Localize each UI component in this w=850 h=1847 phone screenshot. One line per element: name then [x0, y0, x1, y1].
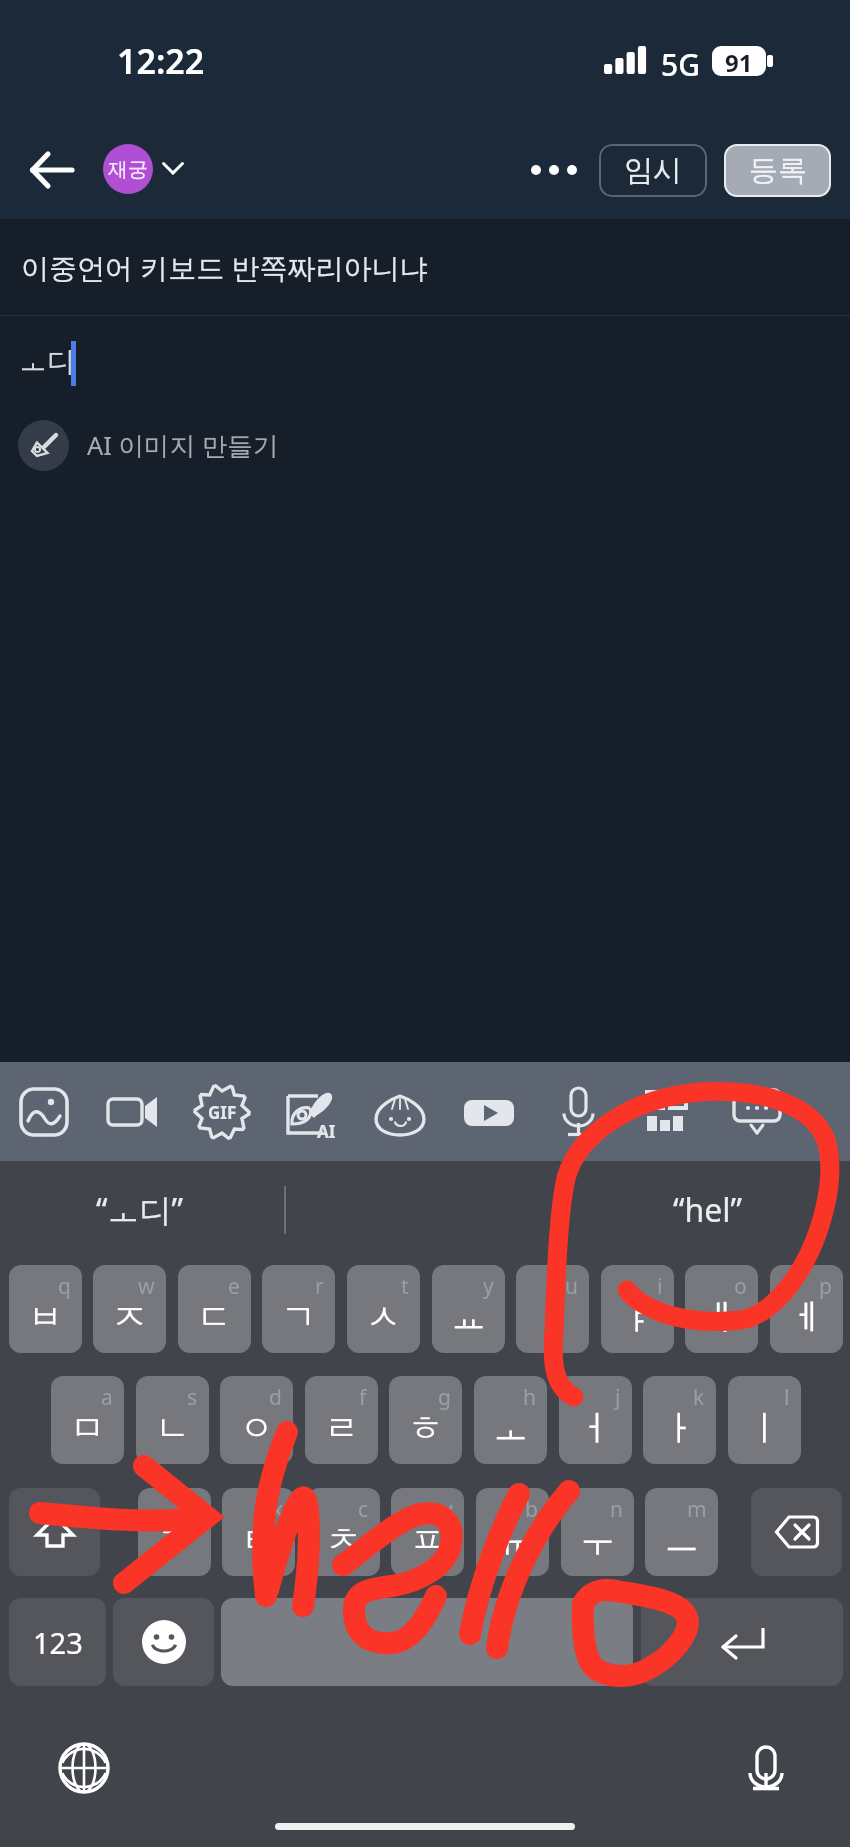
button[interactable]: q	[9, 1265, 82, 1353]
staticText: f	[359, 1383, 367, 1412]
button[interactable]: l	[728, 1376, 801, 1464]
staticText: ㅜ	[580, 1518, 615, 1562]
button[interactable]: Voice input	[726, 1728, 806, 1808]
button[interactable]: i	[601, 1265, 674, 1353]
staticText: 등록	[749, 152, 807, 189]
staticText: u	[565, 1272, 578, 1301]
button[interactable]: e	[178, 1265, 251, 1353]
staticText: ㅇ	[239, 1406, 274, 1450]
staticText: ㅎ	[408, 1406, 443, 1450]
staticText: l	[784, 1383, 790, 1412]
staticText: v	[442, 1495, 453, 1524]
staticText: 123	[33, 1623, 83, 1662]
staticText: ㅏ	[662, 1406, 697, 1450]
button[interactable]: Backspace	[751, 1488, 842, 1576]
staticText: ㅗ	[493, 1406, 528, 1450]
staticText: i	[657, 1272, 663, 1301]
button[interactable]: Image	[0, 1062, 88, 1161]
staticText: ㄹ	[324, 1406, 359, 1450]
button[interactable]: v	[391, 1488, 464, 1576]
button[interactable]: t	[347, 1265, 420, 1353]
staticText: 12:22	[117, 38, 205, 84]
button[interactable]: Shift	[9, 1488, 100, 1576]
staticText: ㅍ	[410, 1518, 445, 1562]
staticText: o	[734, 1272, 747, 1301]
staticText: 이중언어 키보드 반쪽짜리아니냐	[21, 248, 428, 286]
button[interactable]: c	[307, 1488, 380, 1576]
button[interactable]: Voice	[534, 1062, 622, 1161]
staticText: e	[228, 1272, 240, 1301]
staticText: ㅣ	[747, 1406, 782, 1450]
button[interactable]: QR code	[623, 1062, 711, 1161]
button[interactable]: AI 이미지 만들기	[18, 419, 279, 471]
button[interactable]: 임시	[599, 144, 707, 197]
button[interactable]: h	[474, 1376, 547, 1464]
button[interactable]: a	[51, 1376, 124, 1464]
button[interactable]: x	[222, 1488, 295, 1576]
button[interactable]: n	[561, 1488, 634, 1576]
button[interactable]: More keyboards	[712, 1062, 800, 1161]
button[interactable]: f	[305, 1376, 378, 1464]
button[interactable]: s	[136, 1376, 209, 1464]
button[interactable]: Space	[221, 1598, 633, 1686]
button[interactable]: Video	[89, 1062, 177, 1161]
staticText: h	[523, 1383, 536, 1412]
button[interactable]: More options	[518, 140, 590, 200]
staticText: g	[438, 1383, 451, 1412]
staticText: 임시	[624, 152, 682, 189]
button[interactable]: r	[262, 1265, 335, 1353]
button[interactable]: GIF	[178, 1062, 266, 1161]
button[interactable]: 재궁	[103, 136, 184, 202]
staticText: ㅈ	[112, 1295, 147, 1339]
staticText: 5G	[661, 44, 700, 85]
staticText: ㅂ	[28, 1295, 63, 1339]
button[interactable]: j	[559, 1376, 632, 1464]
button[interactable]: 123	[9, 1598, 106, 1686]
staticText: p	[819, 1272, 832, 1301]
staticText: ㅗ디	[19, 344, 75, 379]
button[interactable]: u	[516, 1265, 589, 1353]
staticText: x	[272, 1495, 284, 1524]
staticText: ㄱ	[281, 1295, 316, 1339]
staticText: d	[269, 1383, 282, 1412]
button[interactable]: Change keyboard language	[44, 1728, 124, 1808]
button[interactable]: z	[138, 1488, 211, 1576]
staticText: 91	[725, 46, 753, 76]
button[interactable]: o	[685, 1265, 758, 1353]
button[interactable]: b	[476, 1488, 549, 1576]
staticText: j	[615, 1383, 621, 1412]
button[interactable]: w	[93, 1265, 166, 1353]
staticText: z	[190, 1495, 200, 1524]
staticText: ㅌ	[241, 1518, 276, 1562]
button[interactable]: Back	[14, 136, 88, 204]
staticText: ㅐ	[704, 1295, 739, 1339]
button[interactable]: YouTube	[445, 1062, 533, 1161]
staticText: ㅋ	[157, 1518, 192, 1562]
staticText: t	[401, 1272, 409, 1301]
staticText: k	[693, 1383, 705, 1412]
button[interactable]: y	[432, 1265, 505, 1353]
button[interactable]: p	[770, 1265, 843, 1353]
button[interactable]: d	[220, 1376, 293, 1464]
staticText: GIF	[208, 1101, 237, 1124]
button[interactable]: AI drawing	[267, 1062, 355, 1161]
button[interactable]: Emoji	[113, 1598, 214, 1686]
staticText: ㅓ	[578, 1406, 613, 1450]
button[interactable]: k	[643, 1376, 716, 1464]
button[interactable]: m	[645, 1488, 718, 1576]
staticText: c	[358, 1495, 369, 1524]
staticText: ㅁ	[70, 1406, 105, 1450]
button[interactable]: 등록	[724, 144, 831, 197]
staticText: 재궁	[108, 157, 148, 182]
staticText: ㅊ	[326, 1518, 361, 1562]
button[interactable]: Enter	[641, 1598, 843, 1686]
staticText: ㅛ	[451, 1295, 486, 1339]
staticText: s	[187, 1383, 198, 1412]
button[interactable]: Sticker	[356, 1062, 444, 1161]
button[interactable]: g	[389, 1376, 462, 1464]
staticText: ㅔ	[789, 1295, 824, 1339]
staticText: m	[687, 1495, 707, 1524]
staticText: ㅅ	[366, 1295, 401, 1339]
staticText: AI	[317, 1120, 336, 1143]
staticText: w	[138, 1272, 155, 1301]
